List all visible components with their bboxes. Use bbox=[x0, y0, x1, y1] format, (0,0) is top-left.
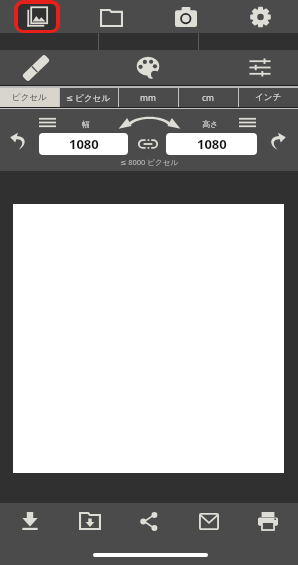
button[interactable]: Eraser bbox=[18, 57, 54, 79]
staticText: ≤ 8000 ピクセル bbox=[120, 157, 179, 167]
button[interactable]: Print bbox=[238, 503, 298, 539]
button[interactable]: mm bbox=[118, 88, 178, 107]
button[interactable]: Undo bbox=[2, 126, 36, 154]
staticText: cm bbox=[202, 92, 215, 104]
button[interactable]: Save to folder bbox=[60, 503, 120, 539]
button[interactable]: cm bbox=[178, 88, 238, 107]
button[interactable]: Adjust bbox=[249, 57, 271, 78]
staticText: 高さ bbox=[202, 119, 219, 129]
staticText: 1080 bbox=[197, 135, 227, 153]
staticText: 1080 bbox=[69, 135, 99, 153]
button[interactable]: 1080 bbox=[166, 133, 257, 155]
button[interactable]: Settings bbox=[223, 0, 298, 33]
staticText: ピクセル bbox=[12, 92, 47, 103]
staticText: mm bbox=[140, 92, 156, 104]
staticText: 幅 bbox=[82, 119, 90, 129]
button[interactable]: 1080 bbox=[39, 133, 128, 155]
staticText: ≤ ピクセル bbox=[66, 92, 111, 104]
button[interactable]: Share bbox=[119, 503, 179, 539]
button[interactable]: Gallery bbox=[0, 0, 74, 33]
button[interactable]: Email bbox=[179, 503, 239, 539]
button[interactable]: Folder bbox=[74, 0, 148, 33]
button[interactable]: Camera bbox=[148, 0, 223, 33]
button[interactable]: Palette bbox=[136, 56, 160, 79]
button[interactable]: Download bbox=[0, 503, 60, 539]
button[interactable]: ≤ ピクセル bbox=[59, 88, 118, 107]
button[interactable]: Redo bbox=[260, 126, 294, 154]
button[interactable]: ピクセル bbox=[0, 88, 59, 107]
button[interactable]: インチ bbox=[238, 88, 298, 107]
button[interactable]: Lock aspect ratio bbox=[138, 136, 158, 152]
button[interactable]: Height presets bbox=[239, 117, 256, 128]
button[interactable]: Width presets bbox=[39, 117, 56, 128]
staticText: インチ bbox=[255, 92, 282, 103]
